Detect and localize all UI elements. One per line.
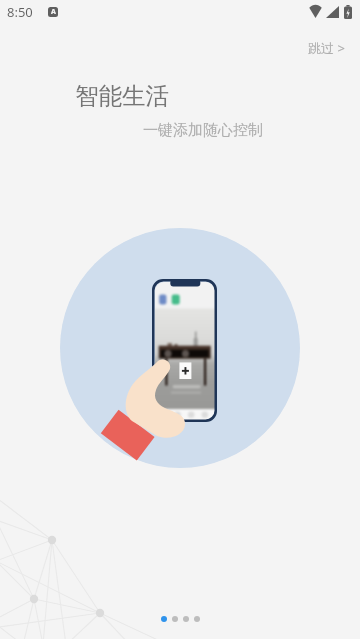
other: Mobile signal [326, 6, 339, 18]
staticText: 智能生活 [75, 81, 169, 111]
staticText: 8:50 [7, 3, 33, 21]
staticText: A [51, 7, 56, 17]
staticText: 一键添加随心控制 [0, 121, 263, 140]
other: Battery charging [344, 5, 352, 19]
button[interactable] [194, 616, 200, 622]
button[interactable] [172, 616, 178, 622]
button[interactable] [183, 616, 189, 622]
other: Wi-Fi [309, 5, 322, 18]
button[interactable]: 跳过 > [300, 33, 353, 63]
staticText: 跳过 > [308, 39, 345, 57]
button[interactable] [161, 616, 167, 622]
